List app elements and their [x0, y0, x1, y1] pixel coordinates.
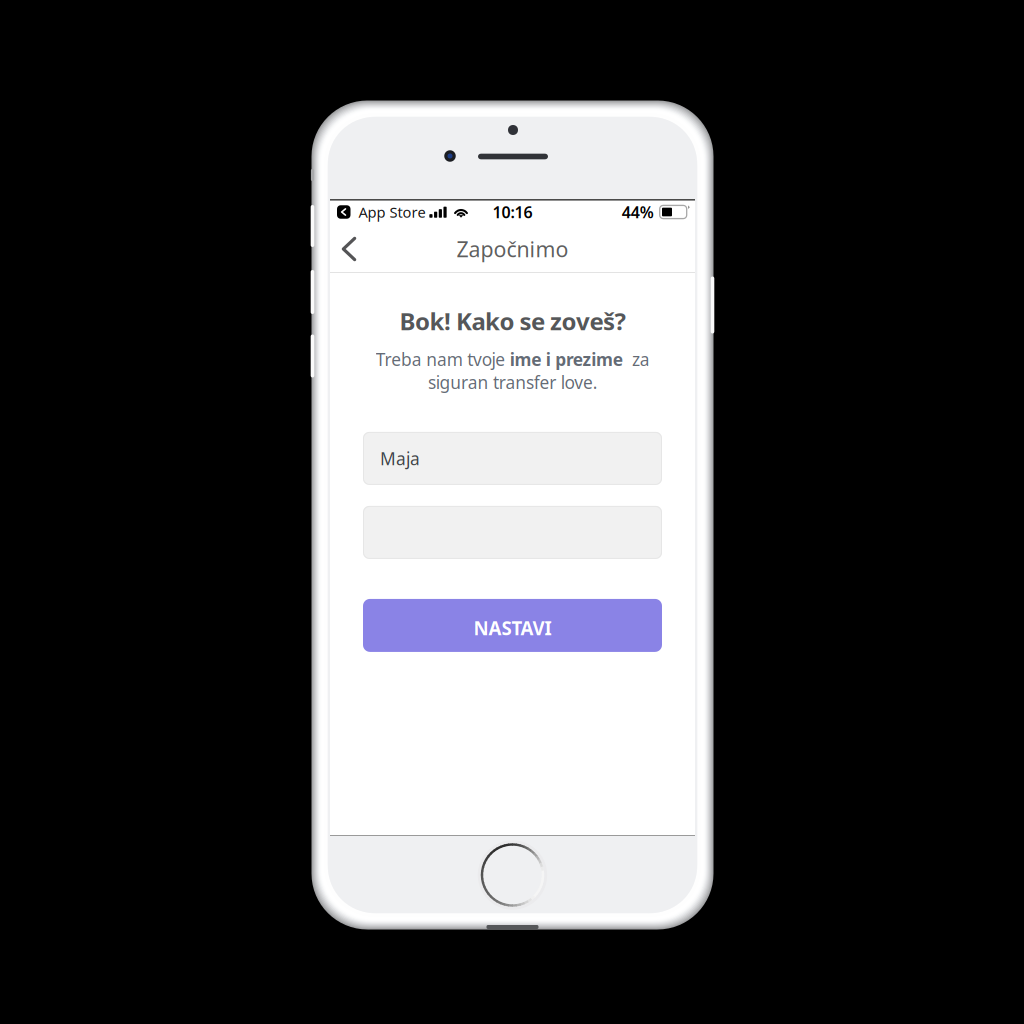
staticText: App Store — [350, 202, 425, 222]
staticText: 44% — [622, 201, 654, 223]
staticText: 10:16 — [492, 201, 532, 223]
button[interactable]: Maja — [363, 432, 662, 485]
staticText: Treba nam tvoje ime i prezime za siguran… — [375, 348, 649, 394]
staticText: Maja — [380, 447, 420, 470]
staticText: Bok! Kako se zoveš? — [399, 305, 625, 337]
staticText: NASTAVI — [473, 615, 551, 640]
staticText: Započnimo — [456, 235, 568, 263]
button[interactable]: Back — [327, 225, 371, 273]
button[interactable]: NASTAVI — [363, 599, 662, 652]
